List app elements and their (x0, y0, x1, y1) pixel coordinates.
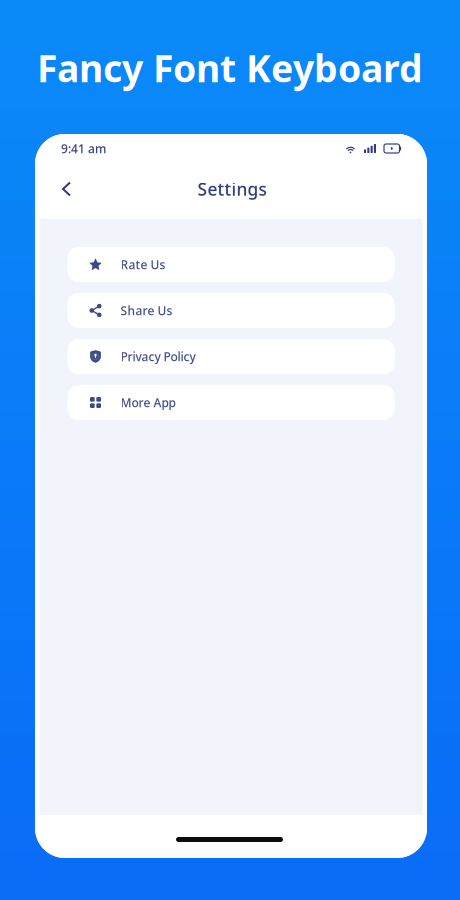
staticText: Privacy Policy (120, 348, 195, 364)
button[interactable]: Privacy Policy (67, 339, 394, 374)
button[interactable]: Back (61, 175, 93, 207)
button[interactable]: Rate Us (67, 247, 394, 282)
staticText: More App (120, 394, 175, 410)
staticText: Rate Us (120, 256, 165, 272)
staticText: 9:41 am (61, 140, 106, 156)
button[interactable]: Share Us (67, 293, 394, 328)
staticText: Share Us (120, 302, 172, 318)
staticText: Settings (197, 177, 266, 200)
staticText: Fancy Font Keyboard (37, 43, 423, 93)
button[interactable]: More App (67, 385, 394, 420)
